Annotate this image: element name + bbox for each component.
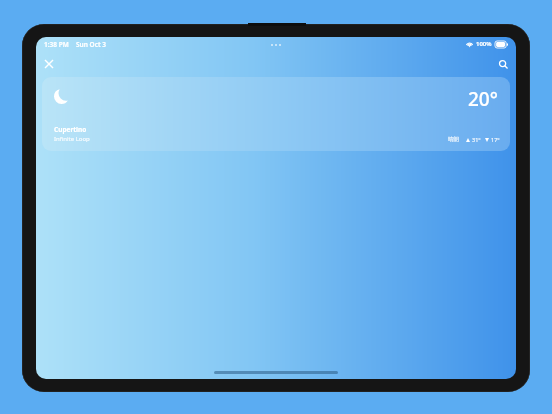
staticText: 17° — [491, 136, 500, 143]
staticText: 20° — [468, 86, 498, 112]
staticText: Cupertino — [54, 125, 87, 134]
staticText: Sun Oct 3 — [76, 40, 106, 49]
staticText: Infinite Loop — [54, 135, 90, 143]
staticText: 31° — [472, 136, 481, 143]
staticText: 晴朗 — [448, 136, 459, 143]
staticText: 100% — [476, 40, 492, 48]
staticText: 1:38 PM — [44, 40, 69, 49]
button[interactable]: Close — [40, 55, 58, 73]
button[interactable]: 20° — [42, 77, 510, 151]
button[interactable]: Search — [494, 55, 512, 73]
